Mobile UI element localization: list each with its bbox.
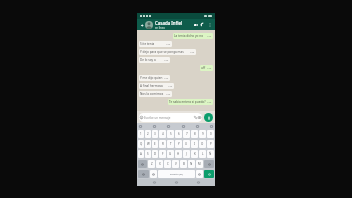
button[interactable]: U — [183, 140, 190, 148]
button[interactable]: Enter — [204, 170, 214, 178]
staticText: T — [170, 142, 172, 146]
button[interactable]: 9 — [199, 130, 206, 138]
button[interactable]: Keyboard tool 5 — [196, 125, 199, 128]
button[interactable]: P — [207, 140, 214, 148]
button[interactable]: Q — [138, 140, 144, 148]
button[interactable]: D — [152, 150, 158, 158]
button[interactable]: Si te tenia durmiendo — [139, 41, 172, 47]
button[interactable]: Español (ES) — [158, 170, 195, 178]
button[interactable]: C — [164, 160, 171, 168]
button[interactable]: Z — [148, 160, 155, 168]
button[interactable]: X — [156, 160, 163, 168]
staticText: A final hermosa asi 69 — [140, 84, 167, 88]
button[interactable]: 2 — [145, 130, 151, 138]
button[interactable]: Send voice message — [204, 113, 213, 122]
button[interactable]: Keyboard tool 2 — [153, 125, 156, 128]
staticText: 0 — [210, 132, 212, 136]
staticText: 14:2 — [207, 67, 212, 70]
button[interactable]: 3 — [152, 130, 158, 138]
staticText: Y dejo para que se ponga mas cachonda — [140, 50, 189, 54]
staticText: B — [183, 162, 185, 166]
button[interactable]: G — [167, 150, 174, 158]
button[interactable]: K — [191, 150, 198, 158]
button[interactable]: N — [188, 160, 195, 168]
staticText: Español (ES) — [170, 173, 183, 176]
button[interactable]: Ñ — [207, 150, 214, 158]
button[interactable]: R — [159, 140, 166, 148]
button[interactable]: Te sabia entera si puedo? — [168, 99, 213, 105]
button[interactable]: L — [199, 150, 206, 158]
button[interactable]: W — [145, 140, 151, 148]
staticText: V — [175, 162, 177, 166]
staticText: E — [154, 142, 156, 146]
button[interactable]: Backspace — [204, 160, 214, 168]
button[interactable]: Shift — [138, 160, 147, 168]
button[interactable]: Recent apps — [193, 179, 203, 186]
staticText: 14:2 — [190, 51, 195, 54]
button[interactable]: Keyboard tool 3 — [167, 125, 170, 128]
button[interactable]: Video call — [192, 19, 199, 30]
button[interactable]: 6 — [175, 130, 182, 138]
button[interactable]: F — [159, 150, 166, 158]
button[interactable]: 4 — [159, 130, 166, 138]
button[interactable]: H — [175, 150, 182, 158]
button[interactable]: M — [196, 160, 203, 168]
button[interactable]: Keyboard tool 1 — [139, 125, 142, 128]
staticText: 5 — [170, 132, 172, 136]
button[interactable]: Comma — [150, 170, 157, 178]
button[interactable]: Keyboard tool 6 — [210, 125, 213, 128]
button[interactable]: B — [180, 160, 187, 168]
button[interactable]: A — [138, 150, 144, 158]
button[interactable]: La tenia dicho yo no se — [173, 33, 213, 39]
button[interactable]: E — [152, 140, 158, 148]
button[interactable]: Casada Infiel — [155, 20, 192, 30]
button[interactable]: J — [183, 150, 190, 158]
staticText: 1 — [140, 132, 142, 136]
button[interactable]: De lo soy a comer — [139, 57, 170, 63]
staticText: La tenia dicho yo no se — [174, 34, 206, 38]
button[interactable]: Back — [139, 22, 145, 28]
staticText: C — [167, 162, 169, 166]
button[interactable]: T — [167, 140, 174, 148]
staticText: 14:2 — [168, 85, 173, 88]
staticText: Ñ — [209, 152, 212, 156]
staticText: Y me dijo quien es — [140, 76, 163, 80]
button[interactable]: 7 — [183, 130, 190, 138]
button[interactable]: V — [172, 160, 179, 168]
button[interactable]: Nos la comimos todo — [139, 91, 172, 97]
staticText: Casada Infiel — [155, 20, 183, 26]
button[interactable]: 5 — [167, 130, 174, 138]
staticText: R — [162, 142, 164, 146]
staticText: W — [147, 142, 150, 146]
button[interactable]: I — [191, 140, 198, 148]
staticText: Escribe un mensaje — [144, 116, 171, 120]
staticText: 14:2 — [207, 35, 212, 38]
button[interactable]: Escribe un mensaje — [139, 113, 202, 122]
button[interactable]: 1 — [138, 130, 144, 138]
button[interactable]: Symbols — [138, 170, 149, 178]
staticText: 9 — [202, 132, 204, 136]
button[interactable]: A final hermosa asi 69 — [139, 83, 174, 89]
button[interactable]: More options — [206, 19, 213, 30]
button[interactable]: 0 — [207, 130, 214, 138]
staticText: en linea — [155, 26, 165, 30]
staticText: F — [162, 152, 164, 156]
button[interactable]: Y — [175, 140, 182, 148]
button[interactable]: Y me dijo quien es — [139, 75, 170, 81]
button[interactable]: Period — [196, 170, 203, 178]
staticText: 14:2 — [166, 43, 171, 46]
staticText: 14:2 — [207, 101, 212, 104]
button[interactable]: uff — [200, 65, 213, 71]
staticText: Y — [178, 142, 180, 146]
staticText: O — [201, 142, 204, 146]
button[interactable]: Y dejo para que se ponga mas cachonda — [139, 49, 196, 55]
button[interactable]: Back — [149, 179, 159, 186]
button[interactable]: S — [145, 150, 151, 158]
button[interactable]: Call — [199, 19, 206, 30]
button[interactable]: O — [199, 140, 206, 148]
button[interactable]: Keyboard tool 4 — [182, 125, 185, 128]
staticText: 14:2 — [164, 59, 169, 62]
staticText: L — [202, 152, 204, 156]
button[interactable]: 8 — [191, 130, 198, 138]
button[interactable]: Home — [171, 179, 181, 186]
